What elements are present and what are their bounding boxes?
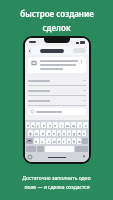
staticText: а <box>48 131 50 136</box>
button[interactable] <box>73 48 86 53</box>
button[interactable]: а <box>46 130 51 136</box>
button[interactable] <box>40 49 64 53</box>
staticText: м <box>53 139 56 144</box>
button[interactable]: э <box>82 130 86 136</box>
button[interactable]: е <box>47 122 52 128</box>
staticText: з <box>79 123 81 128</box>
staticText: с <box>48 139 50 144</box>
staticText: поле — и сделка создастся <box>24 184 90 191</box>
button[interactable]: с <box>46 138 51 144</box>
staticText: сделок <box>42 22 71 33</box>
staticText: и <box>58 139 61 144</box>
staticText: щ <box>72 123 76 128</box>
button[interactable]: о <box>62 130 66 136</box>
staticText: д <box>73 131 76 136</box>
button[interactable]: ы <box>34 130 39 136</box>
staticText: б <box>73 139 76 144</box>
button[interactable]: д <box>72 130 76 136</box>
button[interactable]: щ <box>71 122 76 128</box>
button[interactable] <box>28 96 86 106</box>
staticText: ю <box>78 139 81 144</box>
staticText: т <box>63 139 65 144</box>
button[interactable]: г <box>59 122 64 128</box>
button[interactable]: Shift <box>26 138 33 144</box>
button[interactable]: у <box>36 122 40 128</box>
button[interactable]: и <box>57 138 61 144</box>
button[interactable]: ч <box>40 138 45 144</box>
button[interactable]: я <box>34 138 39 144</box>
button[interactable]: ж <box>77 130 81 136</box>
staticText: п <box>53 131 56 136</box>
button[interactable] <box>28 108 86 115</box>
staticText: ц <box>32 123 35 128</box>
staticText: в <box>42 131 44 136</box>
staticText: р <box>58 131 61 136</box>
staticText: э <box>83 131 85 136</box>
button[interactable]: ф <box>28 130 33 136</box>
button[interactable]: Emoji keyboard <box>28 155 32 159</box>
button[interactable]: More <box>80 60 83 63</box>
button[interactable]: м <box>52 138 56 144</box>
button[interactable]: ю <box>77 138 81 144</box>
button[interactable]: More <box>28 57 86 73</box>
button[interactable]: ц <box>31 122 35 128</box>
button[interactable] <box>28 76 86 86</box>
button[interactable]: ь <box>67 138 71 144</box>
staticText: х <box>85 123 87 128</box>
staticText: Достаточно заполнить одно <box>22 175 91 182</box>
staticText: л <box>68 131 71 136</box>
button[interactable]: п <box>52 130 56 136</box>
staticText: н <box>54 123 57 128</box>
staticText: ь <box>68 139 70 144</box>
staticText: ж <box>78 131 81 136</box>
staticText: й <box>27 123 30 128</box>
button[interactable]: Back <box>28 49 32 53</box>
staticText: е <box>49 123 51 128</box>
button[interactable] <box>28 86 86 96</box>
button[interactable]: ш <box>65 122 70 128</box>
button[interactable]: в <box>40 130 45 136</box>
staticText: я <box>35 139 38 144</box>
staticText: у <box>37 123 39 128</box>
staticText: быстрое создание <box>20 8 94 19</box>
button[interactable]: Dictation <box>82 155 86 159</box>
staticText: о <box>63 131 66 136</box>
button[interactable]: р <box>57 130 61 136</box>
button[interactable]: н <box>53 122 58 128</box>
button[interactable]: з <box>77 122 82 128</box>
staticText: ф <box>29 131 32 136</box>
staticText: г <box>61 123 63 128</box>
button[interactable]: б <box>72 138 76 144</box>
staticText: к <box>43 123 45 128</box>
button[interactable]: к <box>41 122 46 128</box>
staticText: ы <box>35 131 38 136</box>
button[interactable]: х <box>83 122 88 128</box>
staticText: ч <box>41 139 44 144</box>
button[interactable]: й <box>26 122 30 128</box>
button[interactable]: т <box>62 138 66 144</box>
button[interactable]: л <box>67 130 71 136</box>
staticText: ш <box>66 123 70 128</box>
